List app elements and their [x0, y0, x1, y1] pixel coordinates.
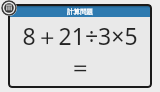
button[interactable]: 計算問題: [8, 4, 152, 88]
button[interactable]: App badge: [1, 0, 17, 16]
staticText: 計算問題: [67, 8, 93, 16]
button[interactable]: 計算問題: [10, 6, 150, 17]
staticText: 8＋21÷3×5＝: [12, 20, 148, 82]
